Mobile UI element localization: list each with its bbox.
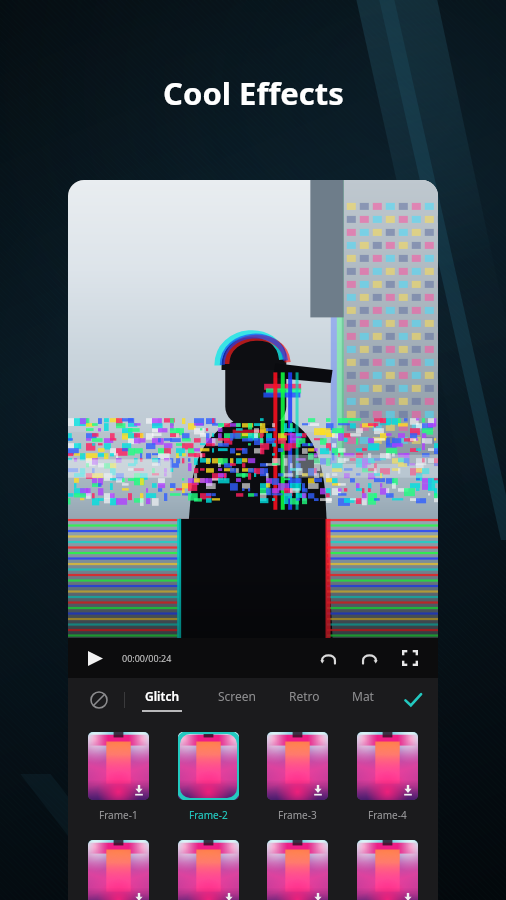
button[interactable]: Frame-1 <box>88 732 149 822</box>
button[interactable]: Frame-3 <box>267 732 328 822</box>
staticText: Retro <box>289 688 320 704</box>
staticText: Frame-2 <box>189 808 228 822</box>
staticText: Screen <box>218 688 257 704</box>
button[interactable]: Glitch <box>142 688 182 712</box>
button[interactable]: Confirm <box>398 685 428 715</box>
button[interactable]: Undo <box>314 644 342 672</box>
button[interactable] <box>357 840 418 900</box>
button[interactable]: Mat <box>352 688 374 712</box>
button[interactable]: Play <box>82 645 108 671</box>
button[interactable]: Redo <box>355 644 383 672</box>
staticText: Glitch <box>145 688 180 704</box>
button[interactable] <box>178 840 239 900</box>
button[interactable]: Frame-4 <box>357 732 418 822</box>
staticText: Frame-4 <box>368 808 407 822</box>
button[interactable] <box>267 840 328 900</box>
button[interactable]: Screen <box>218 688 257 712</box>
button[interactable]: Retro <box>289 688 320 712</box>
staticText: Frame-3 <box>278 808 317 822</box>
staticText: 00:00/00:24 <box>122 652 172 664</box>
staticText: Cool Effects <box>163 72 344 114</box>
staticText: Frame-1 <box>99 808 138 822</box>
button[interactable] <box>88 840 149 900</box>
button[interactable]: Frame-2 <box>178 732 239 822</box>
staticText: Mat <box>352 688 374 704</box>
button[interactable]: Fullscreen <box>396 644 424 672</box>
button[interactable]: No effect <box>86 687 112 713</box>
